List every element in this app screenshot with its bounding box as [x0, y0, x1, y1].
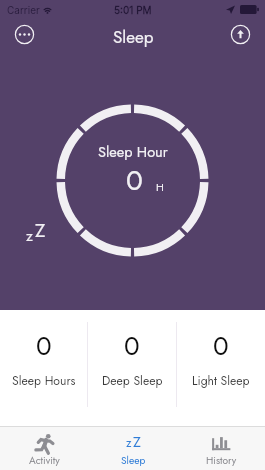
staticText: 0: [124, 327, 140, 365]
staticText: 5:01 PM: [114, 4, 152, 16]
staticText: Z: [133, 431, 141, 452]
staticText: H: [156, 179, 164, 195]
staticText: z: [126, 434, 132, 451]
staticText: Carrier: [7, 4, 40, 16]
staticText: 0: [36, 327, 52, 365]
button[interactable]: z: [89, 427, 177, 470]
staticText: z: [26, 225, 33, 247]
staticText: History: [206, 453, 237, 468]
button[interactable]: More options: [14, 24, 35, 45]
staticText: Activity: [29, 453, 60, 468]
button[interactable]: 0: [0, 310, 87, 425]
button[interactable]: 0: [88, 310, 176, 425]
staticText: 0: [126, 160, 143, 200]
button[interactable]: History: [177, 427, 265, 470]
staticText: Sleep Hour: [98, 141, 168, 162]
staticText: Z: [35, 217, 46, 244]
staticText: Light Sleep: [192, 372, 250, 390]
staticText: Sleep: [121, 453, 146, 468]
button[interactable]: Activity: [0, 427, 89, 470]
button[interactable]: 0: [177, 310, 265, 425]
button[interactable]: Start sleep tracking: [230, 24, 251, 45]
staticText: 0: [213, 327, 229, 365]
staticText: Sleep: [113, 25, 154, 50]
staticText: Sleep Hours: [12, 372, 76, 390]
staticText: Deep Sleep: [102, 372, 163, 390]
